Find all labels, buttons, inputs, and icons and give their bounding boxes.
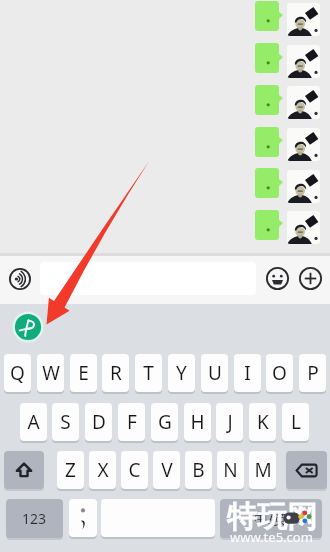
button[interactable]: Input method <box>12 311 44 343</box>
button[interactable]: P <box>299 354 326 392</box>
staticText: J <box>227 409 233 435</box>
staticText: P <box>307 360 319 386</box>
staticText: I <box>244 360 251 386</box>
button[interactable]: Contact avatar <box>287 3 320 36</box>
staticText: N <box>223 457 238 483</box>
staticText: K <box>257 409 269 435</box>
staticText: T <box>143 360 154 386</box>
staticText: C <box>128 457 141 483</box>
button[interactable]: 中/英 <box>220 499 322 538</box>
staticText: O <box>272 360 287 386</box>
staticText: 特玩网 <box>227 498 317 536</box>
button[interactable]: Backspace <box>286 451 327 489</box>
button[interactable] <box>40 262 256 295</box>
button[interactable]: A <box>20 403 47 441</box>
button[interactable] <box>255 43 279 73</box>
staticText: M <box>254 457 272 483</box>
button[interactable]: W <box>37 354 64 392</box>
button[interactable]: Shift <box>4 451 44 489</box>
button[interactable]: More <box>296 264 324 292</box>
staticText: 中/英 <box>254 509 288 528</box>
button[interactable]: Contact avatar <box>287 128 320 161</box>
button[interactable]: N <box>217 451 244 489</box>
button[interactable]: Z <box>57 451 84 489</box>
button[interactable] <box>255 127 279 157</box>
button[interactable]: 123 <box>6 499 63 538</box>
button[interactable]: Contact avatar <box>287 211 320 244</box>
button[interactable] <box>255 85 279 115</box>
button[interactable] <box>255 1 279 31</box>
button[interactable]: Emoji <box>263 264 291 292</box>
button[interactable]: Voice input <box>6 265 34 293</box>
staticText: S <box>60 409 71 435</box>
button[interactable]: Y <box>168 354 195 392</box>
button[interactable]: Contact avatar <box>287 45 320 78</box>
staticText: U <box>208 360 222 386</box>
staticText: V <box>161 457 173 483</box>
button[interactable] <box>255 210 279 240</box>
button[interactable]: M <box>249 451 276 489</box>
staticText: G <box>158 409 172 435</box>
staticText: L <box>291 409 301 435</box>
button[interactable]: G <box>151 403 178 441</box>
staticText: X <box>97 457 109 483</box>
button[interactable]: F <box>118 403 145 441</box>
button[interactable]: J <box>216 403 243 441</box>
button[interactable]: S <box>52 403 79 441</box>
staticText: R <box>110 360 122 386</box>
button[interactable] <box>255 168 279 198</box>
staticText: B <box>192 457 205 483</box>
button[interactable]: I <box>234 354 261 392</box>
staticText: Y <box>176 360 187 386</box>
button[interactable]: R <box>102 354 129 392</box>
button[interactable]: T <box>135 354 162 392</box>
staticText: Q <box>10 360 25 386</box>
button[interactable]: B <box>185 451 212 489</box>
button[interactable]: U <box>201 354 228 392</box>
staticText: D <box>92 409 106 435</box>
staticText: F <box>127 409 137 435</box>
button[interactable]: H <box>184 403 211 441</box>
button[interactable]: Punctuation <box>69 499 97 537</box>
button[interactable]: L <box>282 403 309 441</box>
staticText: www.te5.com <box>230 528 313 546</box>
button[interactable]: E <box>70 354 97 392</box>
button[interactable]: K <box>249 403 276 441</box>
button[interactable]: C <box>121 451 148 489</box>
staticText: A <box>27 409 40 435</box>
staticText: 123 <box>22 509 47 528</box>
button[interactable]: D <box>85 403 112 441</box>
button[interactable]: Q <box>4 354 31 392</box>
staticText: E <box>78 360 89 386</box>
button[interactable]: V <box>153 451 180 489</box>
button[interactable]: O <box>266 354 293 392</box>
staticText: H <box>190 409 205 435</box>
staticText: W <box>42 360 60 386</box>
button[interactable]: Contact avatar <box>287 170 320 203</box>
button[interactable]: Contact avatar <box>287 86 320 119</box>
button[interactable]: X <box>89 451 116 489</box>
staticText: Z <box>65 457 76 483</box>
